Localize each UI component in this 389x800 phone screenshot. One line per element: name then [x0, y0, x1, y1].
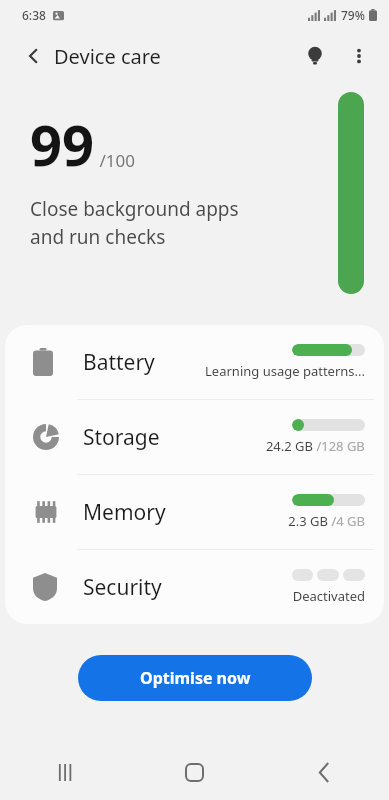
button[interactable]: Back — [298, 746, 350, 798]
staticText: Deactivated — [292, 587, 365, 605]
button[interactable]: More options — [337, 34, 381, 78]
button[interactable]: Storage — [5, 400, 384, 474]
button[interactable]: Memory — [5, 475, 384, 549]
staticText: 6:38 — [22, 7, 46, 23]
staticText: /128 GB — [313, 437, 365, 455]
staticText: /100 — [95, 149, 135, 172]
button[interactable]: Home — [168, 746, 220, 798]
button[interactable]: Optimise now — [78, 655, 312, 701]
staticText: Optimise now — [140, 667, 251, 689]
staticText: Security — [83, 573, 162, 602]
staticText: Memory — [83, 498, 166, 527]
staticText: Device care — [54, 43, 161, 70]
staticText: Learning usage patterns... — [205, 362, 365, 380]
staticText: 2.3 GB — [288, 512, 328, 530]
button[interactable]: Recent apps — [39, 746, 91, 798]
staticText: 79% — [341, 7, 365, 23]
button[interactable]: Battery — [5, 325, 384, 399]
button[interactable]: Back — [14, 36, 54, 76]
staticText: Battery — [83, 348, 155, 377]
staticText: 24.2 GB — [265, 437, 313, 455]
button[interactable]: Tips — [293, 34, 337, 78]
staticText: Close background apps and run checks — [30, 196, 239, 250]
staticText: 99 — [30, 106, 95, 182]
staticText: Storage — [83, 423, 160, 452]
staticText: /4 GB — [328, 512, 365, 530]
button[interactable]: Security — [5, 550, 384, 624]
